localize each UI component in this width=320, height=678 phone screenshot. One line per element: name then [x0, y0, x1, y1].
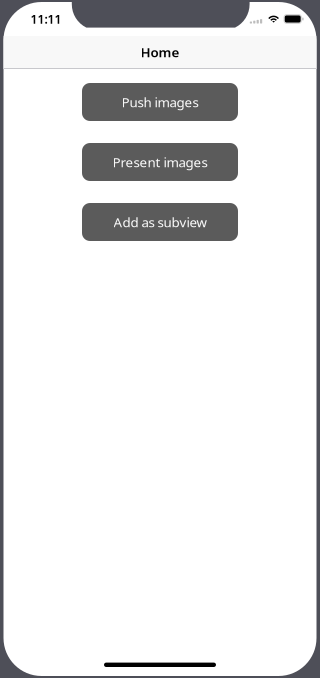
staticText: Present images	[112, 153, 207, 171]
staticText: Add as subview	[113, 213, 206, 231]
button[interactable]: Present images	[82, 143, 238, 181]
button[interactable]: Add as subview	[82, 203, 238, 241]
button[interactable]: Push images	[82, 83, 238, 121]
staticText: Push images	[121, 93, 198, 111]
staticText: 11:11	[30, 11, 61, 27]
staticText: Home	[140, 43, 179, 61]
